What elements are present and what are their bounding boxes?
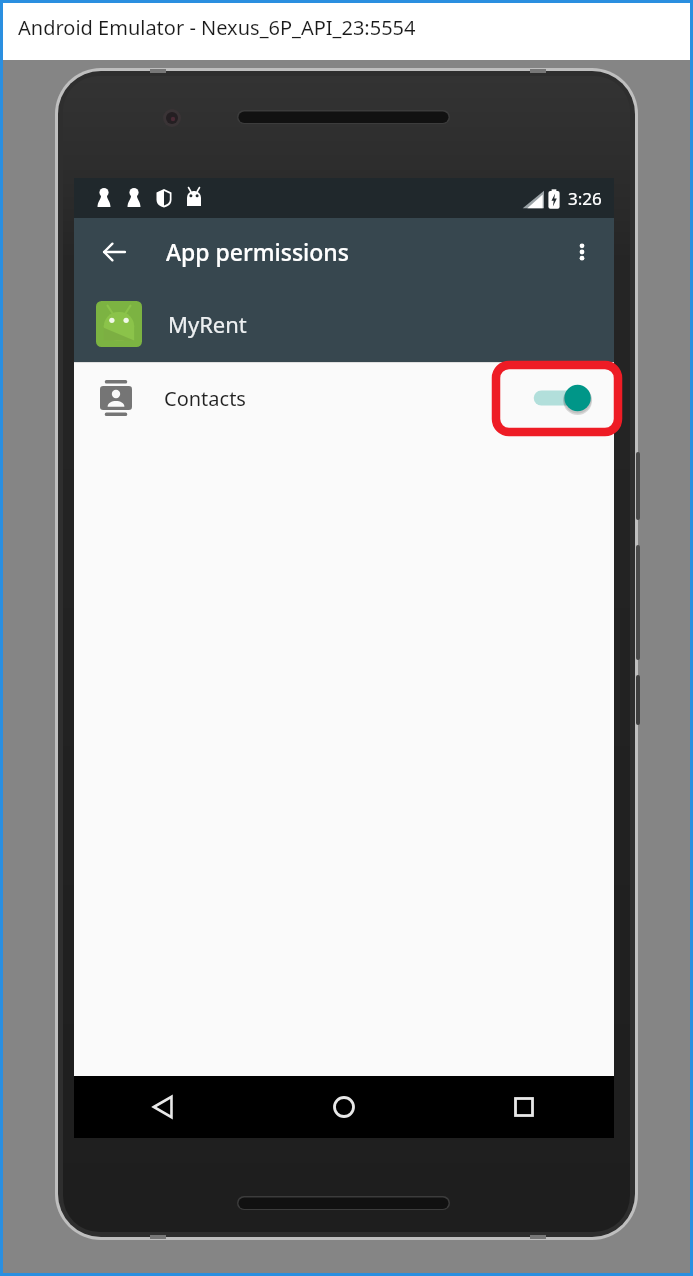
button[interactable]: Contacts permission toggle, on [530,376,592,420]
staticText: MyRent [168,309,247,339]
staticText: 3:26 [568,187,602,210]
button[interactable]: MyRent [74,285,614,362]
button[interactable]: Back [74,1076,254,1138]
staticText: Android Emulator - Nexus_6P_API_23:5554 [18,14,416,41]
button[interactable]: Navigate up [90,228,138,276]
staticText: Contacts [164,385,246,412]
button[interactable]: Home [254,1076,434,1138]
button[interactable]: More options [558,228,606,276]
staticText: App permissions [166,236,349,267]
button[interactable]: Contacts [74,362,614,434]
button[interactable]: Recent apps [434,1076,614,1138]
